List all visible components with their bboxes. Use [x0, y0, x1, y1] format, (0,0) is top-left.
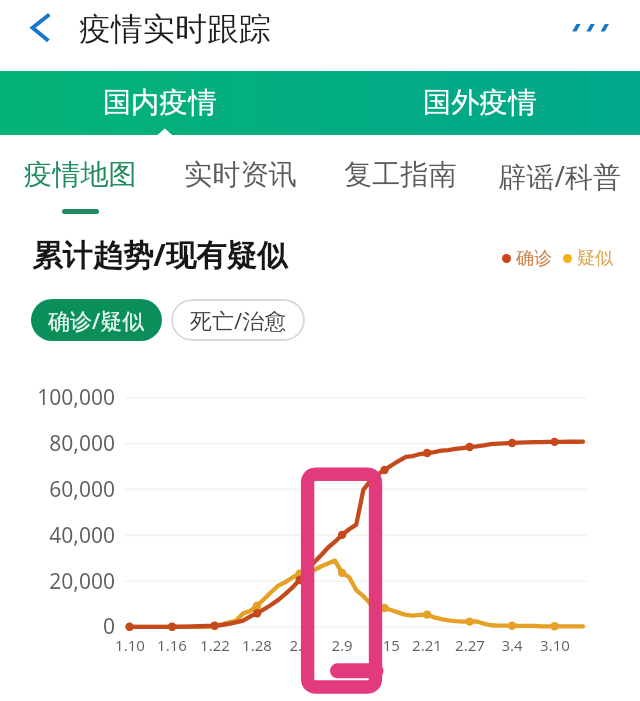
- button[interactable]: 辟谣/科普: [480, 135, 640, 219]
- staticText: 1.22: [180, 635, 250, 655]
- staticText: 20,000: [2, 567, 115, 596]
- staticText: 疑似: [577, 247, 613, 270]
- staticText: 国外疫情: [423, 85, 537, 121]
- button[interactable]: 国外疫情: [320, 71, 640, 135]
- button[interactable]: 疫情地图: [0, 135, 160, 219]
- staticText: 累计趋势/现有疑似: [32, 234, 287, 275]
- button[interactable]: 复工指南: [320, 135, 480, 219]
- staticText: 3.4: [477, 635, 547, 655]
- staticText: 确诊: [516, 247, 552, 270]
- staticText: 复工指南: [344, 157, 457, 193]
- staticText: 疫情地图: [24, 157, 137, 193]
- staticText: 3.10: [520, 635, 590, 655]
- staticText: 2.21: [392, 635, 462, 655]
- staticText: 40,000: [2, 521, 115, 550]
- button[interactable]: More options: [560, 6, 620, 60]
- button[interactable]: 实时资讯: [160, 135, 320, 219]
- staticText: 100,000: [2, 383, 115, 412]
- staticText: 2.9: [307, 635, 377, 655]
- staticText: 2.27: [435, 635, 505, 655]
- staticText: 80,000: [2, 429, 115, 458]
- staticText: 国内疫情: [103, 85, 217, 121]
- staticText: 1.10: [95, 635, 165, 655]
- staticText: 疫情实时跟踪: [79, 9, 271, 49]
- staticText: 2.15: [350, 635, 420, 655]
- button[interactable]: 确诊/疑似: [31, 299, 162, 341]
- staticText: 死亡/治愈: [190, 305, 287, 335]
- staticText: 实时资讯: [184, 157, 297, 193]
- staticText: 辟谣/科普: [498, 157, 622, 196]
- staticText: 60,000: [2, 475, 115, 504]
- staticText: 1.28: [222, 635, 292, 655]
- button[interactable]: Back: [10, 4, 68, 66]
- staticText: 1.16: [137, 635, 207, 655]
- staticText: 确诊/疑似: [48, 305, 145, 335]
- staticText: 0: [2, 612, 115, 641]
- button[interactable]: 死亡/治愈: [171, 299, 305, 341]
- staticText: 2.3: [265, 635, 335, 655]
- button[interactable]: 国内疫情: [0, 71, 320, 135]
